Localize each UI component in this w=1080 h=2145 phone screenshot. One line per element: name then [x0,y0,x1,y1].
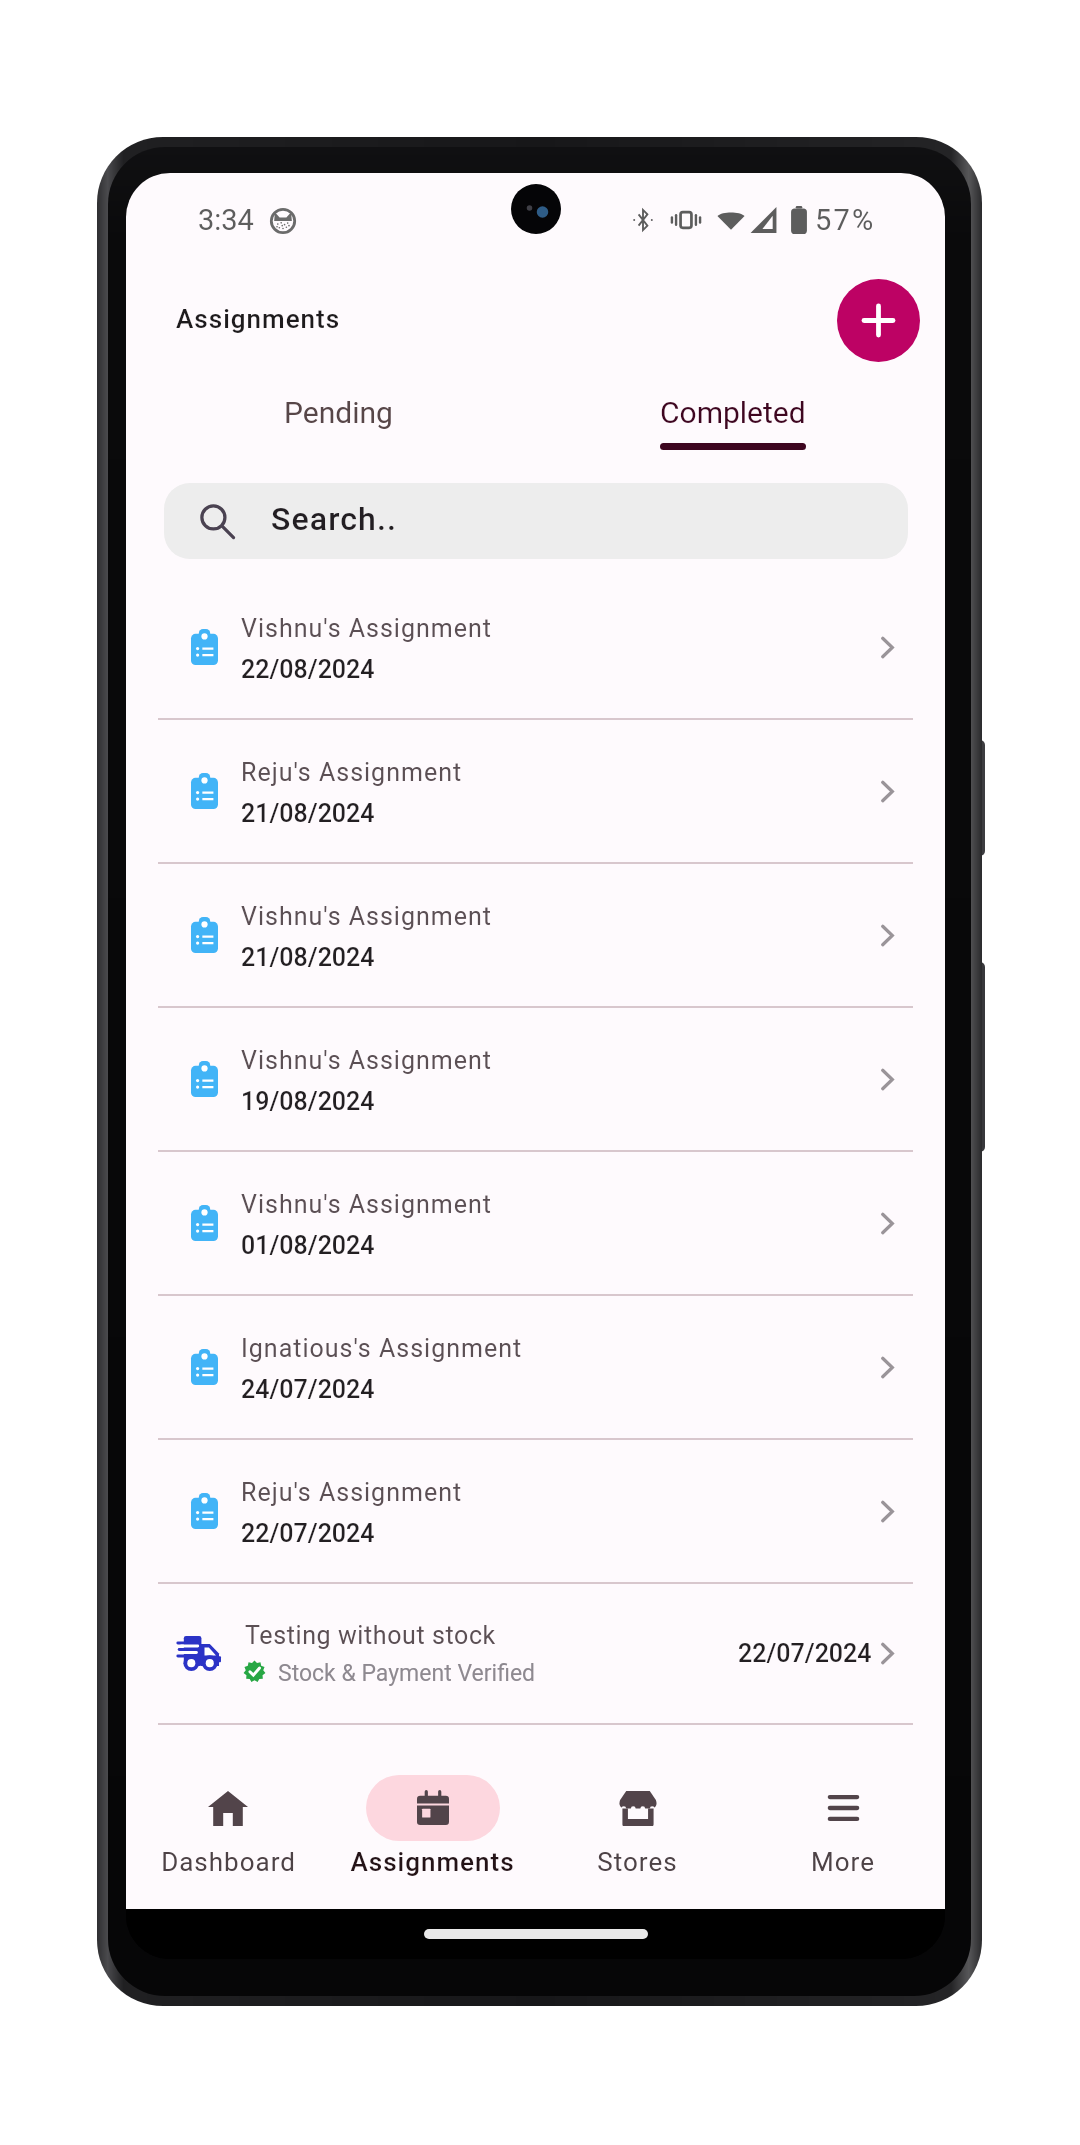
staticText: Stock & Payment Verified [278,1660,536,1687]
staticText: 24/07/2024 [241,1375,375,1404]
button[interactable]: Testing without stock [126,1584,945,1725]
button[interactable]: Vishnu's Assignment [126,576,945,720]
button[interactable]: Add assignment [837,279,920,362]
button[interactable]: More [740,1767,945,1909]
staticText: Pending [284,395,393,430]
button[interactable]: Reju's Assignment [126,1440,945,1584]
staticText: 22/07/2024 [738,1639,872,1668]
staticText: Reju's Assignment [241,1478,463,1507]
button[interactable]: Assignments [330,1767,535,1909]
button[interactable]: Pending [141,375,535,453]
staticText: 22/08/2024 [241,655,375,684]
staticText: 01/08/2024 [241,1231,375,1260]
staticText: 22/07/2024 [241,1519,375,1548]
button[interactable]: Reju's Assignment [126,720,945,864]
staticText: Vishnu's Assignment [241,1190,492,1219]
staticText: Assignments [176,304,341,334]
staticText: Reju's Assignment [241,758,463,787]
staticText: 57% [815,203,876,237]
staticText: Search.. [271,500,397,538]
staticText: 3:34 [198,203,254,237]
staticText: More [811,1847,875,1877]
staticText: Vishnu's Assignment [241,902,492,931]
staticText: Completed [660,395,806,430]
button[interactable]: Vishnu's Assignment [126,1152,945,1296]
staticText: 21/08/2024 [241,799,375,828]
button[interactable]: Ignatious's Assignment [126,1296,945,1440]
staticText: 21/08/2024 [241,943,375,972]
staticText: Ignatious's Assignment [241,1334,523,1363]
button[interactable]: Completed [535,375,930,453]
button[interactable]: Search.. [164,483,908,559]
staticText: Vishnu's Assignment [241,1046,492,1075]
staticText: Testing without stock [245,1621,496,1650]
staticText: Vishnu's Assignment [241,614,492,643]
staticText: Stores [597,1847,678,1877]
button[interactable]: Vishnu's Assignment [126,864,945,1008]
staticText: 19/08/2024 [241,1087,375,1116]
button[interactable]: Stores [535,1767,740,1909]
staticText: Dashboard [161,1847,296,1877]
staticText: Assignments [350,1847,515,1877]
button[interactable]: Dashboard [126,1767,330,1909]
button[interactable]: Vishnu's Assignment [126,1008,945,1152]
